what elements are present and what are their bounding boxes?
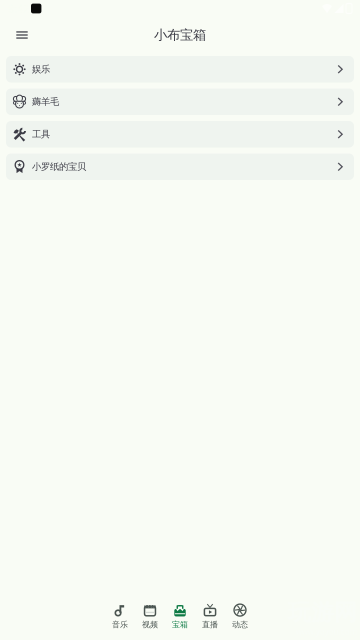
staticText: 薅羊毛 bbox=[32, 96, 59, 107]
button[interactable]: 娱乐 bbox=[6, 56, 354, 82]
staticText: 娱乐 bbox=[32, 63, 50, 75]
staticText: 工具 bbox=[32, 128, 50, 140]
staticText: 直播 bbox=[202, 620, 218, 629]
staticText: 音乐 bbox=[112, 620, 128, 629]
staticText: 宝箱 bbox=[172, 620, 188, 629]
button[interactable]: Menu bbox=[11, 25, 33, 45]
button[interactable]: 音乐 bbox=[105, 601, 135, 632]
button[interactable]: 宝箱 bbox=[165, 601, 195, 632]
button[interactable]: 工具 bbox=[6, 121, 354, 147]
button[interactable]: 直播 bbox=[195, 601, 225, 632]
staticText: 视频 bbox=[142, 620, 158, 629]
button[interactable]: 薅羊毛 bbox=[6, 88, 354, 115]
staticText: 小罗纸的宝贝 bbox=[32, 161, 86, 172]
button[interactable]: 动态 bbox=[225, 601, 255, 632]
staticText: 动态 bbox=[232, 620, 248, 629]
staticText: 小布宝箱 bbox=[154, 27, 206, 43]
button[interactable]: 小罗纸的宝贝 bbox=[6, 153, 354, 180]
button[interactable]: 视频 bbox=[135, 601, 165, 632]
